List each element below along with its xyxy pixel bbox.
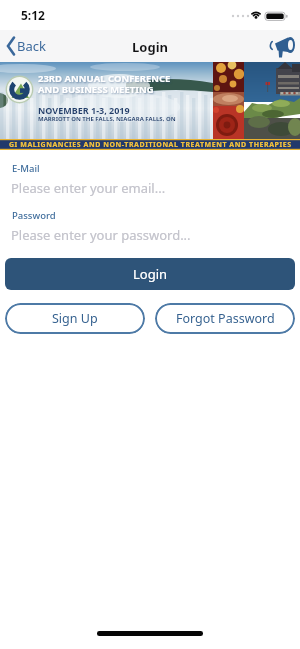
staticText: Please enter your password... bbox=[11, 226, 191, 244]
staticText: E-Mail bbox=[12, 162, 40, 175]
button[interactable]: Sign Up bbox=[5, 303, 145, 334]
staticText: 23RD ANNUAL CONFERENCE bbox=[38, 72, 171, 85]
button[interactable]: Please enter your password... bbox=[6, 224, 294, 246]
staticText: GI MALIGNANCIES AND NON-TRADITIONAL TREA… bbox=[9, 140, 292, 150]
staticText: MARRIOTT ON THE FALLS, NIAGARA FALLS, ON bbox=[38, 115, 176, 123]
staticText: Back bbox=[17, 37, 46, 55]
button[interactable]: Back bbox=[4, 34, 64, 58]
button[interactable]: Forgot Password bbox=[155, 303, 295, 334]
staticText: AND BUSINESS MEETING bbox=[38, 83, 154, 96]
button[interactable]: Please enter your email... bbox=[6, 177, 294, 199]
staticText: 5:12 bbox=[21, 7, 45, 23]
staticText: Please enter your email... bbox=[11, 179, 166, 197]
staticText: Login bbox=[0, 38, 300, 56]
button[interactable]: Login bbox=[5, 258, 295, 290]
staticText: Password bbox=[12, 209, 56, 222]
button[interactable] bbox=[268, 34, 298, 60]
staticText: Forgot Password bbox=[176, 310, 275, 327]
staticText: Sign Up bbox=[52, 310, 98, 327]
staticText: Login bbox=[133, 265, 168, 283]
staticText: NOVEMBER 1-3, 2019 bbox=[38, 104, 130, 116]
